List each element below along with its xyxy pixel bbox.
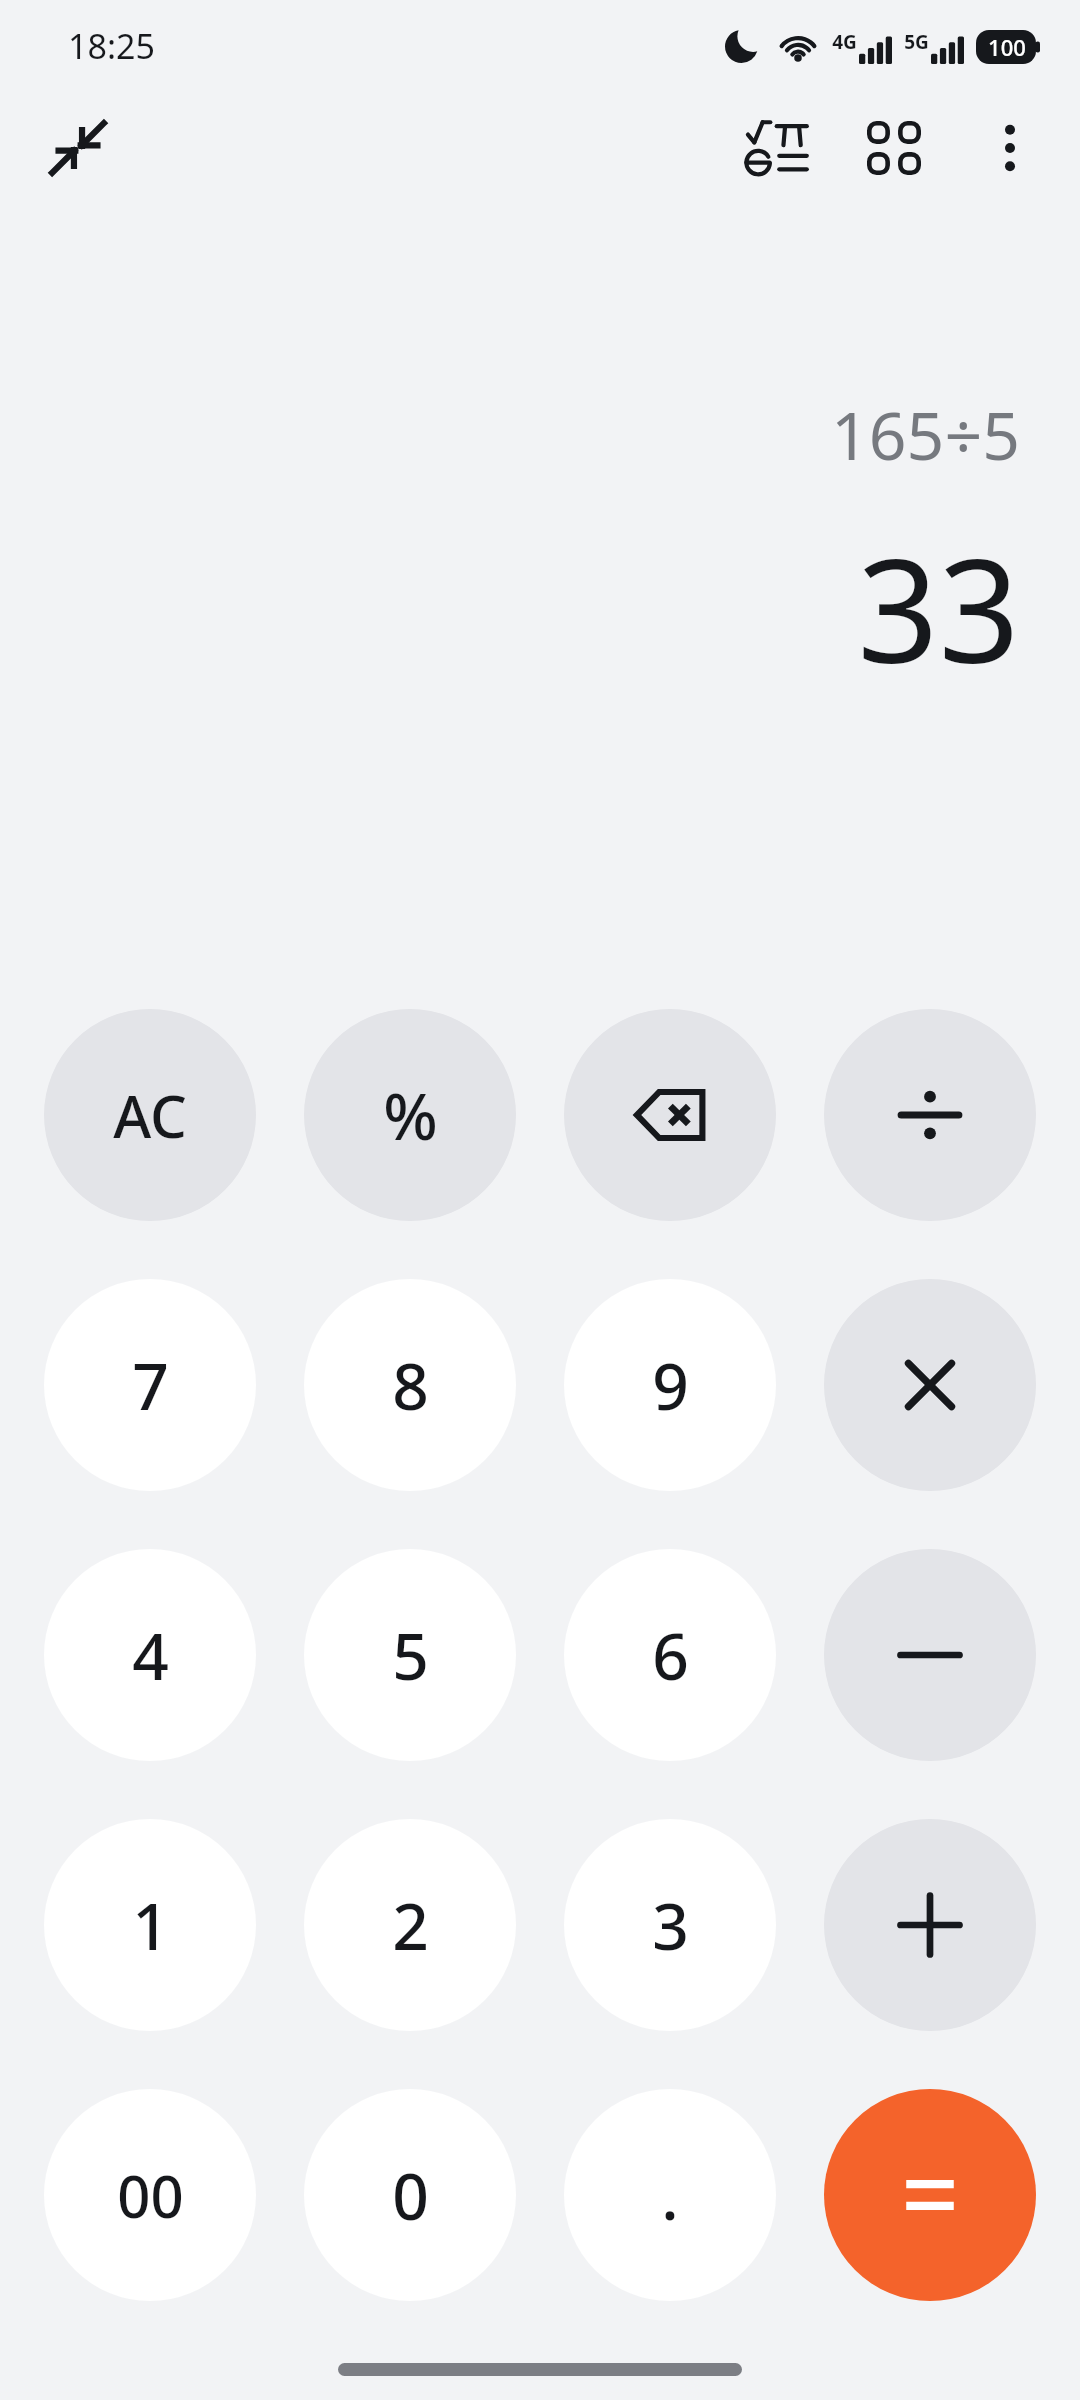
staticText: 4 (132, 1612, 169, 1699)
button[interactable]: Scientific mode (726, 96, 830, 200)
button[interactable]: . (564, 2089, 776, 2301)
staticText: % (383, 1072, 438, 1159)
button[interactable]: AC (44, 1009, 256, 1221)
button[interactable]: 4 (44, 1549, 256, 1761)
button[interactable]: Apps (842, 96, 946, 200)
button[interactable]: 1 (44, 1819, 256, 2031)
staticText: 00 (117, 2156, 184, 2235)
staticText: 5 (392, 1612, 429, 1699)
staticText: . (661, 2152, 679, 2239)
staticText: 165÷5 (831, 389, 1020, 479)
button[interactable]: 8 (304, 1279, 516, 1491)
staticText: 100 (988, 32, 1026, 62)
staticText: 8 (392, 1342, 429, 1429)
staticText: 2 (392, 1882, 429, 1969)
staticText: 0 (392, 2152, 429, 2239)
staticText: 5G (904, 29, 929, 55)
staticText: 1 (132, 1882, 169, 1969)
staticText: 3 (652, 1882, 689, 1969)
button[interactable]: 7 (44, 1279, 256, 1491)
staticText: 6 (652, 1612, 689, 1699)
button[interactable]: Divide (824, 1009, 1036, 1221)
button[interactable]: Multiply (824, 1279, 1036, 1491)
button[interactable]: 0 (304, 2089, 516, 2301)
button[interactable]: 9 (564, 1279, 776, 1491)
button[interactable]: Backspace (564, 1009, 776, 1221)
button[interactable]: Plus (824, 1819, 1036, 2031)
button[interactable]: % (304, 1009, 516, 1221)
button[interactable]: 5 (304, 1549, 516, 1761)
button[interactable]: More options (958, 96, 1062, 200)
button[interactable]: 00 (44, 2089, 256, 2301)
button[interactable]: Minus (824, 1549, 1036, 1761)
button[interactable]: 3 (564, 1819, 776, 2031)
staticText: 33 (857, 511, 1020, 704)
staticText: 9 (652, 1342, 689, 1429)
button[interactable]: 2 (304, 1819, 516, 2031)
button[interactable]: Collapse (26, 96, 130, 200)
staticText: 4G (832, 29, 857, 55)
button[interactable]: Equals (824, 2089, 1036, 2301)
staticText: AC (113, 1076, 187, 1155)
button[interactable]: 6 (564, 1549, 776, 1761)
staticText: 7 (132, 1342, 169, 1429)
staticText: 18:25 (68, 23, 155, 69)
